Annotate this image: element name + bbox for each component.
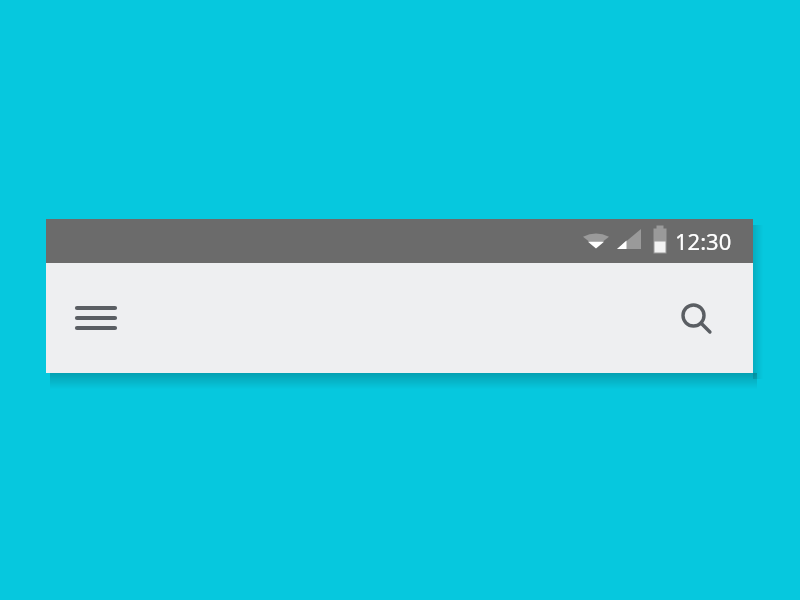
button[interactable]: Open navigation menu [61, 283, 131, 353]
button[interactable]: Search [661, 283, 731, 353]
staticText: 12:30 [675, 226, 732, 256]
